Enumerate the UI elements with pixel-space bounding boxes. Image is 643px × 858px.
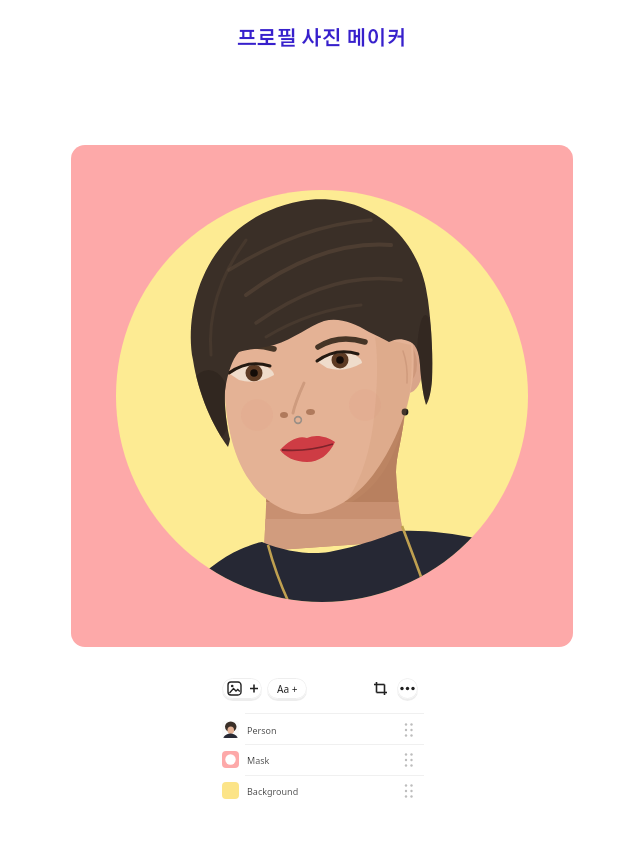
button[interactable]: Mask bbox=[219, 745, 424, 775]
staticText: Background bbox=[247, 785, 299, 797]
staticText: 프로필 사진 메이커 bbox=[0, 29, 643, 49]
button[interactable] bbox=[397, 678, 418, 699]
staticText: Mask bbox=[247, 754, 270, 766]
button[interactable]: Person bbox=[219, 714, 424, 744]
button[interactable] bbox=[222, 678, 262, 699]
button[interactable] bbox=[372, 680, 389, 697]
staticText: Person bbox=[247, 724, 277, 736]
button[interactable]: Aa + bbox=[267, 678, 307, 699]
button[interactable] bbox=[71, 145, 573, 647]
staticText: Aa + bbox=[277, 682, 298, 696]
button[interactable]: Background bbox=[219, 776, 424, 806]
